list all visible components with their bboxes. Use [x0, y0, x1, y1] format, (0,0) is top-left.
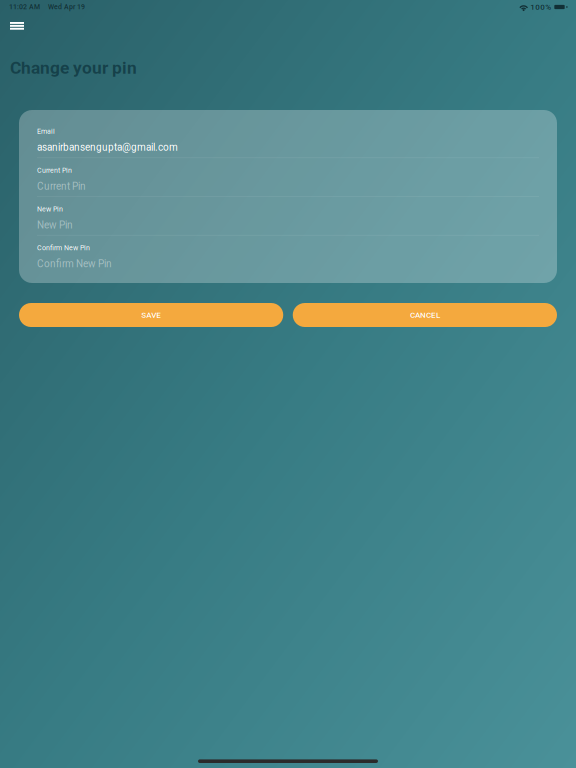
- staticText: Change your pin: [10, 58, 137, 78]
- staticText: asanirbansengupta@gmail.com: [37, 142, 178, 153]
- staticText: New Pin: [37, 205, 63, 213]
- staticText: Confirm New Pin: [37, 244, 90, 252]
- staticText: Email: [37, 127, 55, 136]
- staticText: 100%: [530, 2, 551, 12]
- staticText: 11:02 AM: [9, 3, 40, 11]
- staticText: SAVE: [141, 310, 161, 320]
- staticText: CANCEL: [410, 310, 440, 320]
- button[interactable]: Menu: [0, 14, 34, 36]
- button[interactable]: CANCEL: [293, 303, 557, 327]
- button[interactable]: SAVE: [19, 303, 283, 327]
- staticText: New Pin: [37, 219, 73, 231]
- staticText: Current Pin: [37, 180, 86, 192]
- staticText: Current Pin: [37, 166, 72, 174]
- staticText: Confirm New Pin: [37, 258, 112, 270]
- staticText: Wed Apr 19: [48, 3, 85, 11]
